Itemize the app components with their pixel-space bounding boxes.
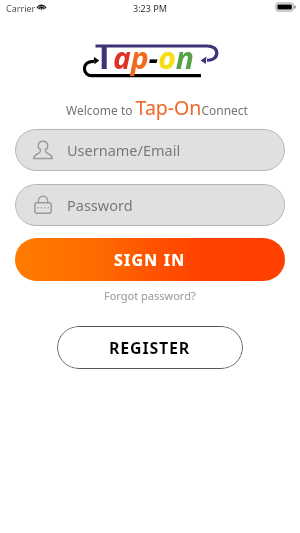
staticText: REGISTER xyxy=(109,337,191,359)
button[interactable]: Forgot password? xyxy=(96,286,204,305)
button[interactable]: Username/Email xyxy=(15,129,285,171)
button[interactable]: SIGN IN xyxy=(15,238,285,281)
staticText: 3:23 PM xyxy=(133,2,167,14)
staticText: Password xyxy=(67,195,133,215)
button[interactable]: Password xyxy=(15,184,285,226)
staticText: Forgot password? xyxy=(104,288,196,303)
staticText: Username/Email xyxy=(67,140,181,160)
staticText: SIGN IN xyxy=(114,249,186,271)
button[interactable]: REGISTER xyxy=(57,326,243,369)
staticText: Carrier xyxy=(6,2,36,14)
staticText: ap-on xyxy=(113,37,194,78)
staticText: Welcome to Tap-OnConnect xyxy=(66,94,248,121)
